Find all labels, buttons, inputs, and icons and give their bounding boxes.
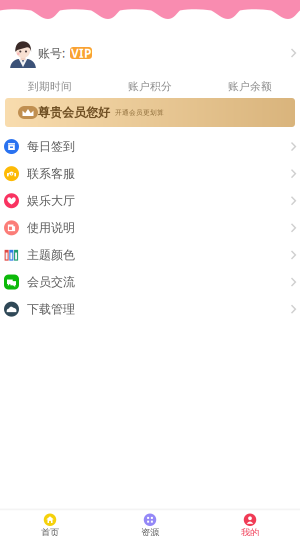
staticText: 到期时间 (28, 80, 72, 93)
staticText: 开通会员更划算 (115, 108, 164, 117)
staticText: 首页 (41, 527, 59, 536)
button[interactable]: 主题颜色 (0, 241, 300, 268)
button[interactable]: 资源 (100, 513, 200, 536)
staticText: 联系客服 (27, 166, 75, 181)
staticText: 使用说明 (27, 220, 75, 235)
button[interactable]: 首页 (0, 513, 100, 536)
button[interactable]: 娱乐大厅 (0, 187, 300, 214)
button[interactable]: 使用说明 (0, 214, 300, 241)
button[interactable]: 尊贵会员您好 (5, 98, 295, 127)
button[interactable]: 联系客服 (0, 160, 300, 187)
staticText: 尊贵会员您好 (38, 105, 110, 120)
staticText: 我的 (241, 527, 259, 536)
button[interactable]: 会员交流 (0, 268, 300, 296)
staticText: 每日签到 (27, 139, 75, 154)
button[interactable]: 每日签到 (0, 133, 300, 160)
staticText: 娱乐大厅 (27, 193, 75, 208)
staticText: 下载管理 (27, 302, 75, 316)
staticText: VIP (71, 45, 91, 61)
button[interactable]: 我的 (200, 513, 300, 536)
button[interactable]: 下载管理 (0, 296, 300, 323)
staticText: 会员交流 (27, 275, 75, 289)
staticText: 主题颜色 (27, 248, 75, 262)
staticText: 账户余额 (228, 80, 272, 93)
staticText: 账号: (38, 45, 65, 61)
staticText: 资源 (141, 527, 159, 536)
staticText: 账户积分 (128, 80, 172, 93)
button[interactable]: 账号: (0, 38, 300, 68)
